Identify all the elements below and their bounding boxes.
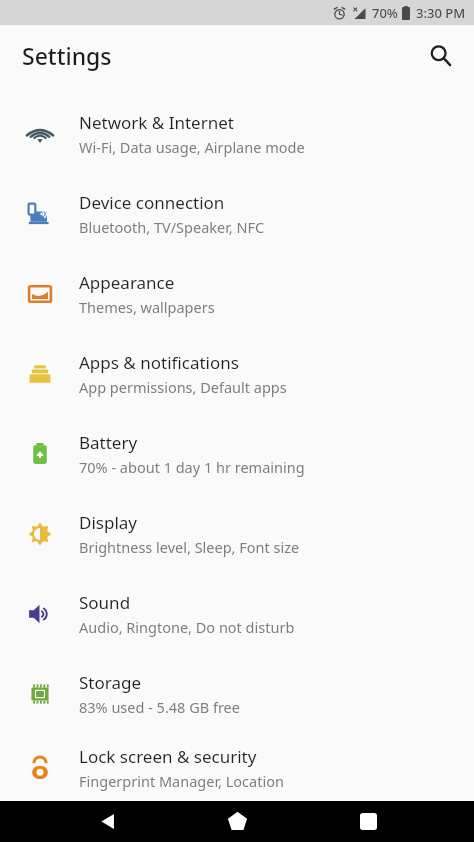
staticText: 83% used - 5.48 GB free <box>79 697 240 717</box>
button[interactable]: Recents <box>344 801 392 842</box>
staticText: Display <box>79 511 137 534</box>
button[interactable]: Battery <box>0 414 474 494</box>
staticText: App permissions, Default apps <box>79 377 287 397</box>
staticText: 3:30 PM <box>416 4 466 22</box>
staticText: Storage <box>79 671 142 694</box>
button[interactable]: Home <box>213 801 261 842</box>
button[interactable]: Lock screen & security <box>0 734 474 801</box>
staticText: Themes, wallpapers <box>79 297 215 317</box>
staticText: Network & Internet <box>79 111 234 134</box>
button[interactable]: Display <box>0 494 474 574</box>
staticText: Fingerprint Manager, Location <box>79 771 284 791</box>
staticText: Sound <box>79 591 131 614</box>
staticText: Brightness level, Sleep, Font size <box>79 537 300 557</box>
staticText: Apps & notifications <box>79 351 239 374</box>
staticText: Device connection <box>79 191 225 214</box>
button[interactable]: Device connection <box>0 174 474 254</box>
button[interactable]: Search <box>418 33 462 77</box>
button[interactable]: Sound <box>0 574 474 654</box>
button[interactable]: Apps & notifications <box>0 334 474 414</box>
staticText: 70% <box>372 4 398 22</box>
staticText: 70% - about 1 day 1 hr remaining <box>79 457 305 477</box>
staticText: Bluetooth, TV/Speaker, NFC <box>79 217 265 237</box>
staticText: Wi-Fi, Data usage, Airplane mode <box>79 137 305 157</box>
staticText: Battery <box>79 431 138 454</box>
button[interactable]: Appearance <box>0 254 474 334</box>
staticText: Audio, Ringtone, Do not disturb <box>79 617 295 637</box>
button[interactable]: Storage <box>0 654 474 734</box>
staticText: Settings <box>22 40 112 71</box>
button[interactable]: Network & Internet <box>0 94 474 174</box>
staticText: Lock screen & security <box>79 745 257 768</box>
button[interactable]: Back <box>83 801 131 842</box>
staticText: Appearance <box>79 271 175 294</box>
